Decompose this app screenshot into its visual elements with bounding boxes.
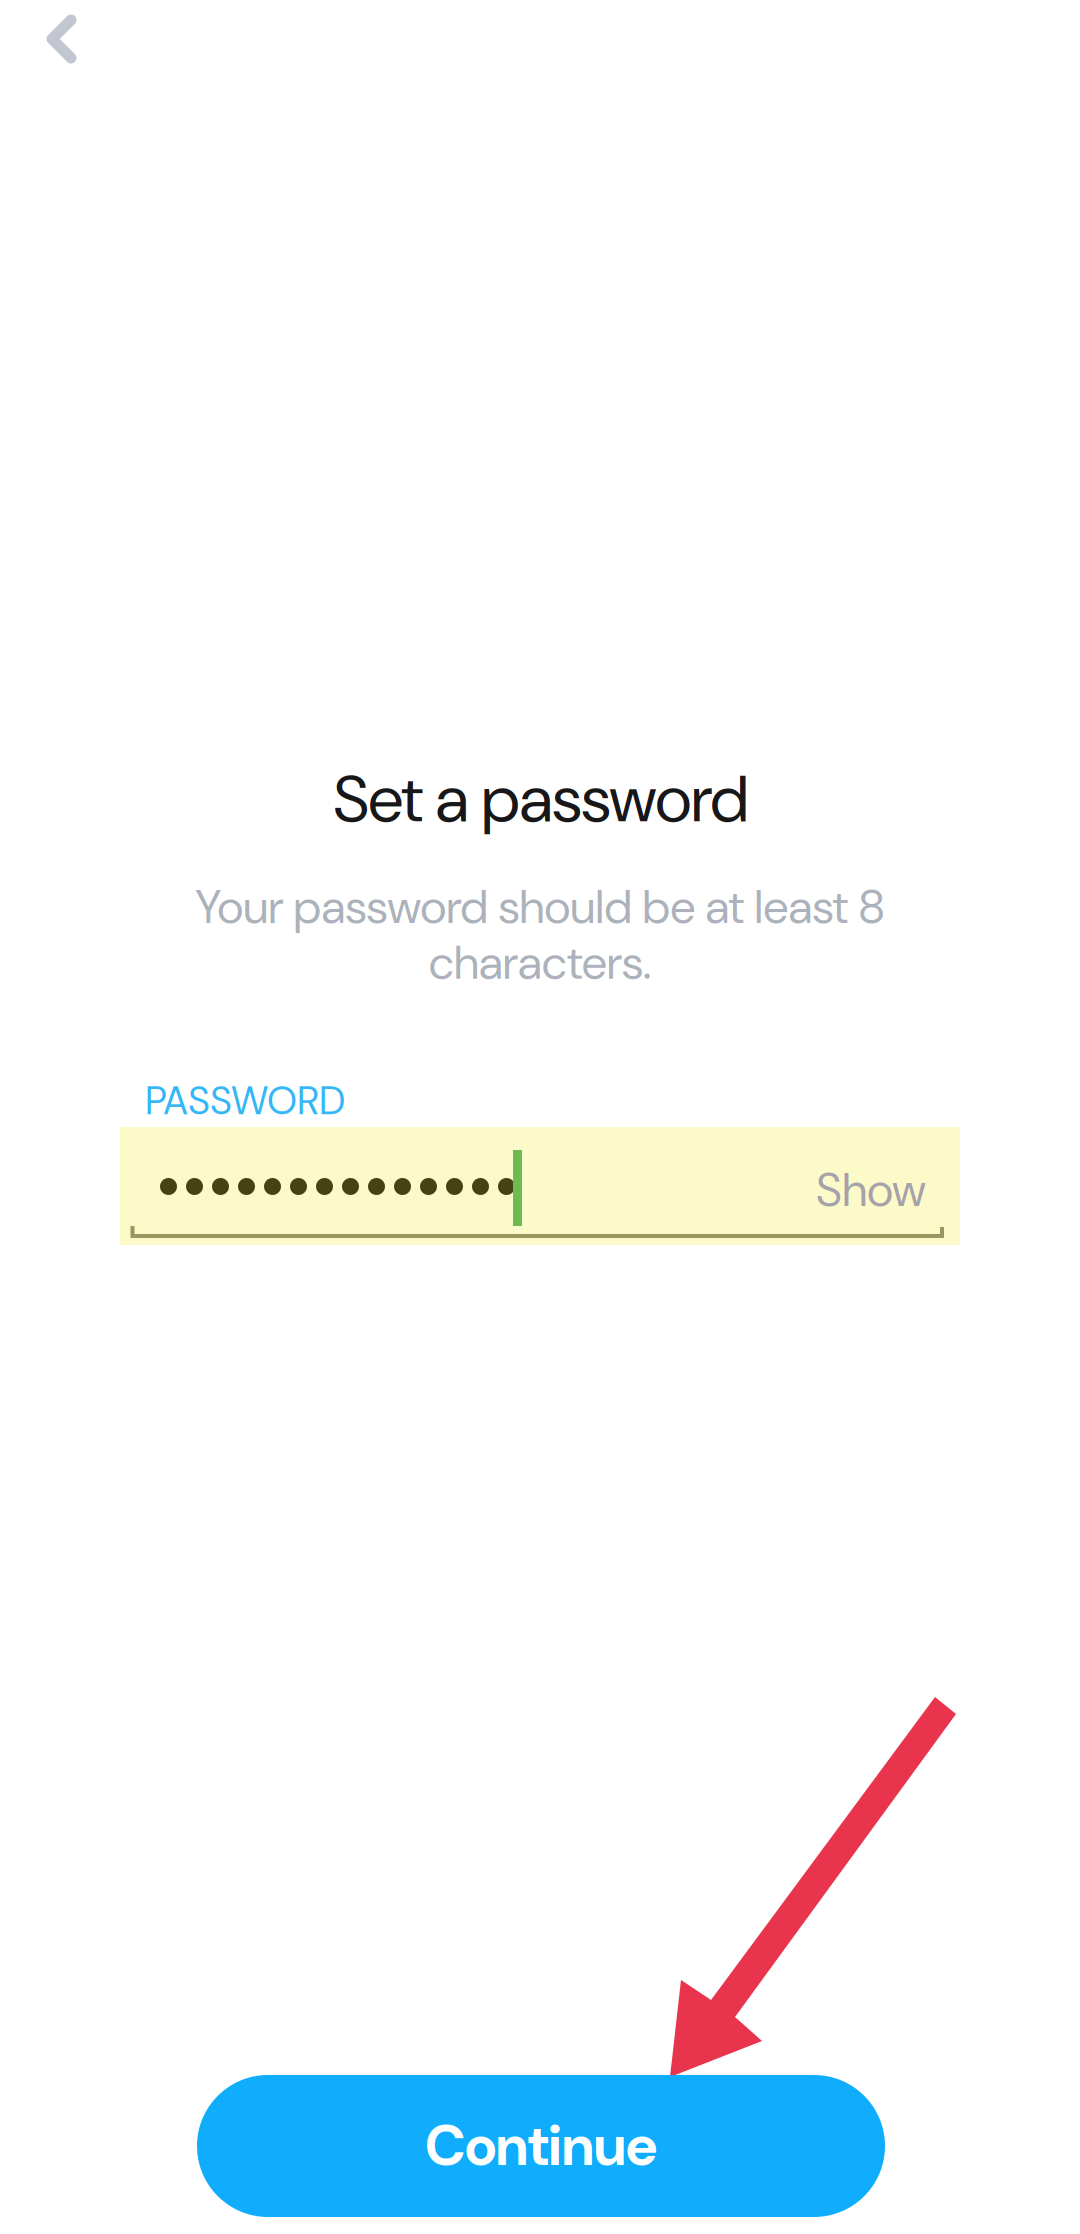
button[interactable]: Show — [766, 1142, 926, 1238]
staticText: PASSWORD — [145, 1076, 345, 1126]
staticText: Continue — [425, 2109, 657, 2182]
staticText: Show — [816, 1160, 926, 1220]
staticText: Your password should be at least 8 chara… — [195, 877, 885, 993]
staticText: Set a password — [333, 756, 748, 842]
button[interactable]: Continue — [197, 2075, 885, 2217]
button[interactable]: Back — [2, 0, 122, 99]
